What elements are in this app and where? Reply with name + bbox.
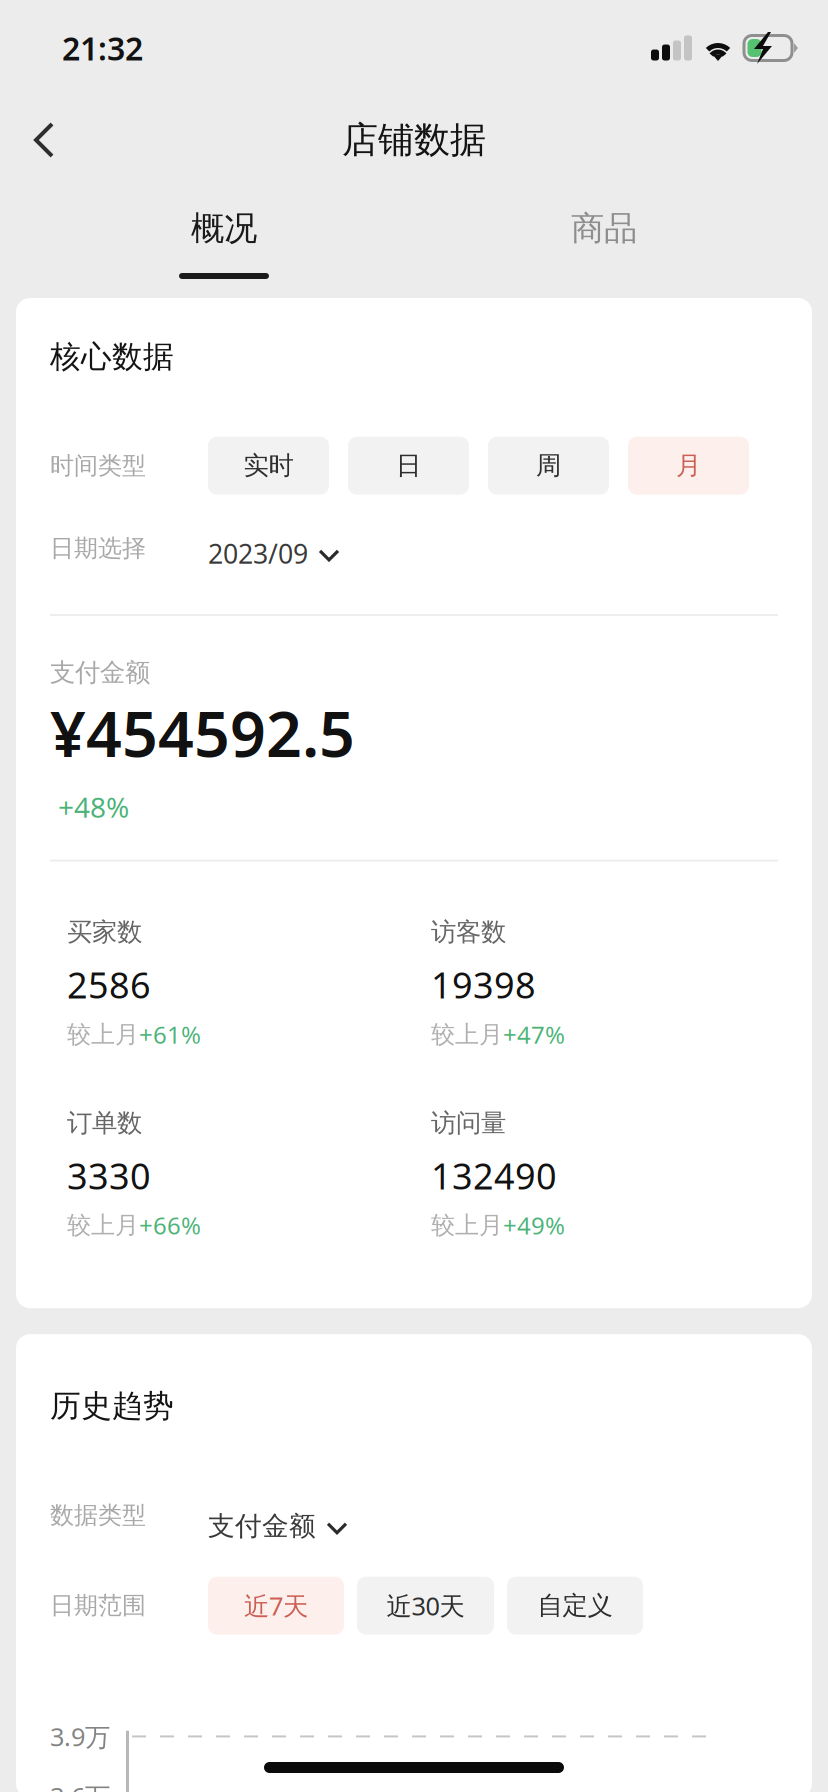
- button[interactable]: 概况: [34, 203, 414, 279]
- staticText: 时间类型: [50, 451, 146, 480]
- staticText: 3.6万: [50, 1779, 110, 1792]
- staticText: 店铺数据: [342, 118, 486, 162]
- staticText: 实时: [243, 450, 293, 481]
- staticText: 商品: [571, 208, 637, 249]
- staticText: 日: [396, 450, 421, 481]
- button[interactable]: 日: [348, 437, 469, 495]
- staticText: 日期范围: [50, 1591, 146, 1620]
- button[interactable]: 支付金额: [208, 1499, 348, 1532]
- staticText: 月: [676, 450, 701, 481]
- staticText: 数据类型: [50, 1500, 146, 1530]
- button[interactable]: 自定义: [507, 1577, 643, 1635]
- staticText: 近30天: [386, 1589, 464, 1622]
- staticText: 近7天: [244, 1589, 308, 1622]
- staticText: 访客数: [431, 917, 506, 948]
- staticText: 访问量: [431, 1107, 506, 1138]
- button[interactable]: 周: [488, 437, 609, 495]
- staticText: 订单数: [67, 1107, 142, 1138]
- staticText: 自定义: [537, 1590, 612, 1621]
- staticText: 3.9万: [50, 1720, 110, 1753]
- button[interactable]: 近7天: [208, 1577, 344, 1635]
- staticText: 19398: [431, 961, 536, 1008]
- staticText: +47%: [503, 1018, 565, 1050]
- staticText: +61%: [139, 1018, 201, 1050]
- staticText: ¥454592.5: [50, 691, 355, 774]
- staticText: +48%: [58, 788, 129, 826]
- staticText: 支付金额: [50, 657, 150, 688]
- staticText: 2586: [67, 961, 151, 1008]
- button[interactable]: 实时: [208, 437, 329, 495]
- button[interactable]: 近30天: [357, 1577, 494, 1635]
- staticText: 21:32: [62, 27, 143, 69]
- button[interactable]: 2023/09: [208, 531, 340, 566]
- staticText: 周: [536, 450, 561, 481]
- button[interactable]: 返回: [22, 110, 88, 170]
- staticText: 核心数据: [50, 338, 174, 376]
- staticText: 历史趋势: [50, 1387, 174, 1425]
- staticText: +49%: [503, 1209, 565, 1241]
- staticText: +66%: [139, 1209, 201, 1241]
- staticText: 较上月: [67, 1210, 139, 1240]
- staticText: 支付金额: [208, 1510, 316, 1543]
- staticText: 较上月: [431, 1020, 503, 1049]
- staticText: 较上月: [67, 1020, 139, 1049]
- staticText: 概况: [191, 208, 257, 249]
- staticText: 日期选择: [50, 534, 146, 563]
- staticText: 买家数: [67, 917, 142, 948]
- button[interactable]: 商品: [414, 203, 794, 279]
- staticText: 132490: [431, 1151, 557, 1199]
- staticText: 2023/09: [208, 536, 308, 571]
- staticText: 3330: [67, 1151, 151, 1199]
- staticText: 较上月: [431, 1210, 503, 1240]
- button[interactable]: 月: [628, 437, 749, 495]
